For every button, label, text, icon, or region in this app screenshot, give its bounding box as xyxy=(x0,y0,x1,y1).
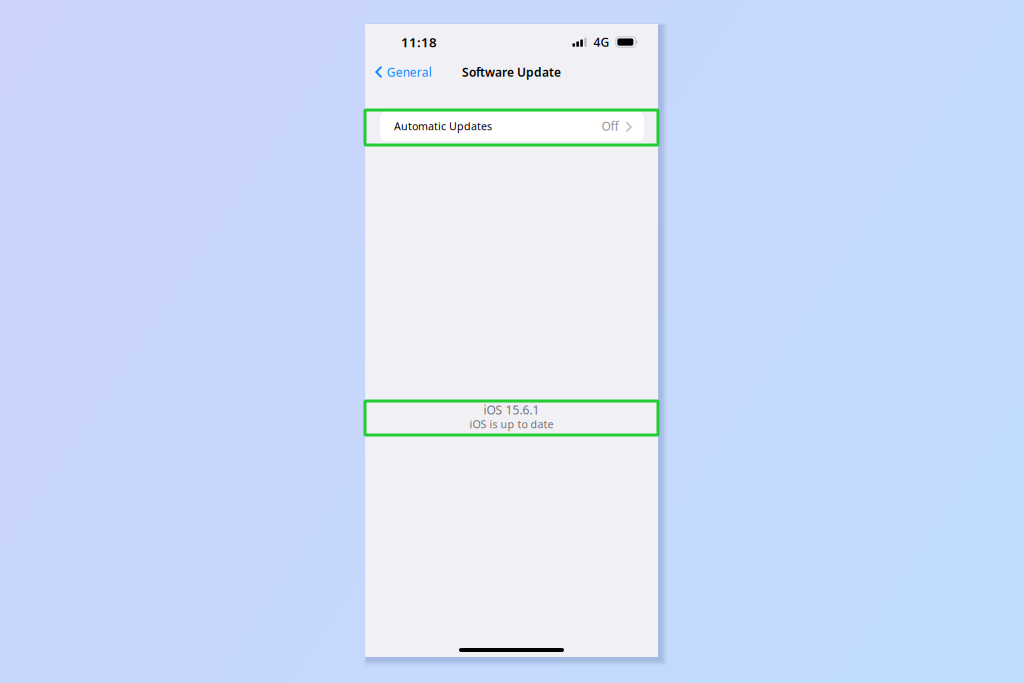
button[interactable]: General xyxy=(365,59,443,85)
button[interactable]: Automatic Updates xyxy=(380,111,644,141)
staticText: 4G xyxy=(594,34,610,50)
staticText: 11:18 xyxy=(401,33,437,51)
staticText: Off xyxy=(601,118,618,134)
staticText: Software Update xyxy=(462,64,561,80)
staticText: iOS is up to date xyxy=(469,417,553,431)
staticText: Automatic Updates xyxy=(394,119,492,133)
staticText: General xyxy=(387,64,432,80)
staticText: iOS 15.6.1 xyxy=(483,402,539,418)
